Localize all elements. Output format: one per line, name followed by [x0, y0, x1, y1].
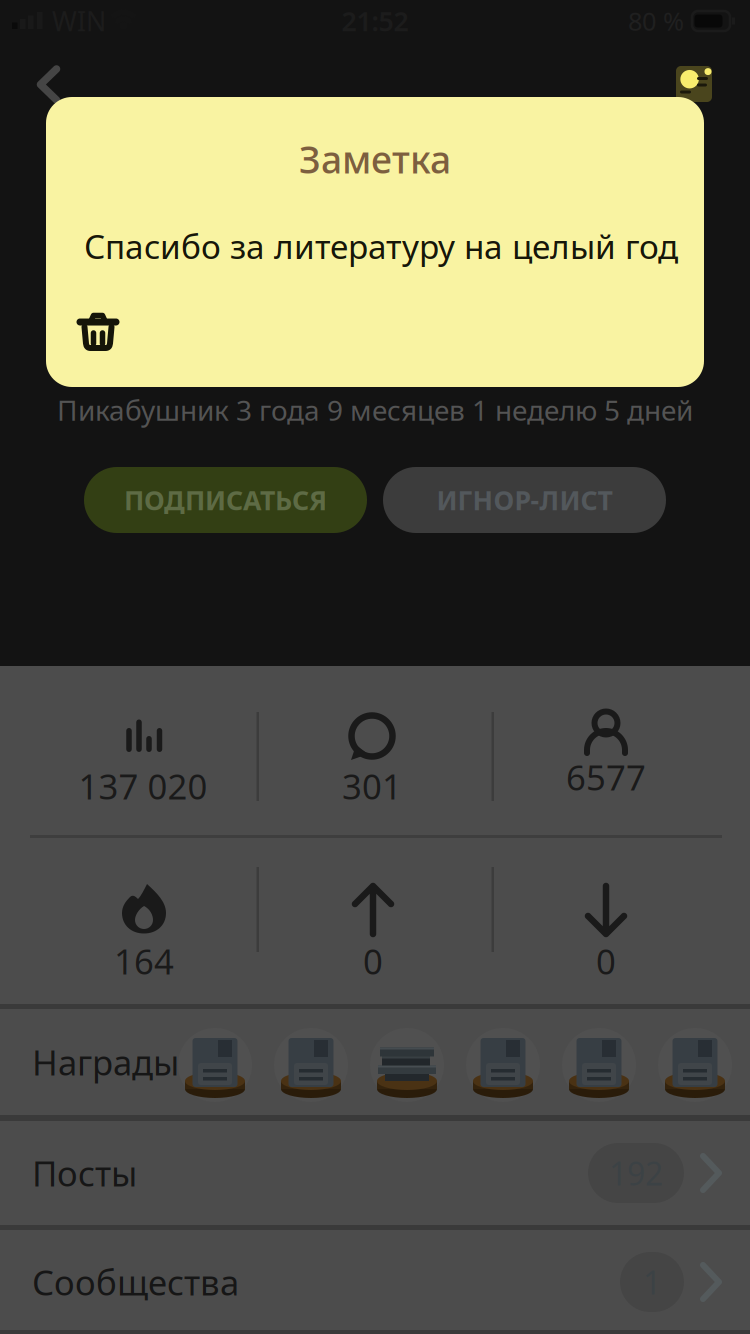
staticText: 0: [363, 938, 383, 984]
staticText: 164: [114, 938, 174, 984]
button[interactable]: Посты: [0, 1121, 750, 1225]
staticText: 192: [609, 1152, 663, 1194]
staticText: Спасибо за литературу на целый год: [84, 224, 678, 268]
staticText: 137 020: [78, 763, 207, 809]
staticText: 301: [342, 763, 402, 809]
button[interactable]: ИГНОР-ЛИСТ: [383, 467, 666, 533]
button[interactable]: Note: [674, 64, 714, 104]
button[interactable]: Delete note: [78, 312, 118, 352]
staticText: 6577: [566, 754, 646, 800]
staticText: Заметка: [299, 134, 451, 184]
button[interactable]: Награды: [0, 1009, 750, 1115]
staticText: Пикабушник 3 года 9 месяцев 1 неделю 5 д…: [57, 391, 693, 429]
staticText: Награды: [32, 1039, 179, 1085]
staticText: WIN: [52, 3, 106, 39]
staticText: Посты: [32, 1150, 137, 1196]
staticText: ПОДПИСАТЬСЯ: [124, 482, 327, 518]
staticText: 80 %: [628, 4, 684, 38]
button[interactable]: Back: [33, 64, 65, 106]
staticText: ИГНОР-ЛИСТ: [436, 482, 612, 518]
staticText: 0: [596, 938, 616, 984]
staticText: Сообщества: [32, 1259, 239, 1305]
button[interactable]: Сообщества: [0, 1230, 750, 1334]
button[interactable]: ПОДПИСАТЬСЯ: [84, 467, 367, 533]
staticText: 21:52: [341, 3, 408, 39]
